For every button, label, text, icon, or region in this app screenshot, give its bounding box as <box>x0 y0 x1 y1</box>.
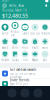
button[interactable]: Notifications <box>44 4 48 7</box>
staticText: Request <box>10 30 19 37</box>
button[interactable]: Top up <box>30 24 40 35</box>
staticText: Up to 5% on every purchase <box>10 72 35 79</box>
staticText: Watch <box>31 58 38 62</box>
staticText: Thursday, March 14 <box>2 9 27 12</box>
button[interactable]: More <box>40 38 50 49</box>
button[interactable]: Saved <box>0 38 10 49</box>
staticText: Health <box>0 58 9 62</box>
staticText: Invite friends <box>10 78 29 82</box>
staticText: Goals <box>11 58 18 62</box>
staticText: Earn $10 per referral <box>10 82 28 89</box>
staticText: Saved <box>1 46 8 49</box>
staticText: Top up <box>30 32 40 35</box>
button[interactable]: Cards <box>20 24 30 35</box>
staticText: $12,480.55 <box>2 12 28 19</box>
button[interactable]: Link <box>20 50 30 62</box>
staticText: Send <box>1 32 8 35</box>
staticText: Cards <box>21 32 28 35</box>
staticText: Vault <box>31 46 38 49</box>
staticText: Bills <box>12 46 18 49</box>
staticText: Files <box>22 46 28 49</box>
staticText: History <box>40 32 49 35</box>
button[interactable]: History <box>40 24 50 35</box>
button[interactable]: Vault <box>30 38 40 49</box>
staticText: All <box>43 58 47 62</box>
staticText: More <box>41 46 48 49</box>
button[interactable]: Bills <box>10 38 20 49</box>
button[interactable]: Watch <box>30 50 40 62</box>
button[interactable]: All <box>40 50 50 62</box>
staticText: Get cashback rewards <box>10 68 36 71</box>
button[interactable]: Files <box>20 38 30 49</box>
button[interactable]: Invite friends <box>0 78 50 86</box>
button[interactable]: Request <box>10 22 20 37</box>
button[interactable]: Send <box>0 24 10 35</box>
button[interactable]: Goals <box>10 50 20 62</box>
staticText: 9:41 <box>2 0 9 2</box>
button[interactable]: Health <box>0 50 10 62</box>
staticText: Link <box>22 58 27 62</box>
button[interactable]: Get cashback rewards <box>0 68 50 78</box>
staticText: Hello, Alex <box>8 4 23 7</box>
